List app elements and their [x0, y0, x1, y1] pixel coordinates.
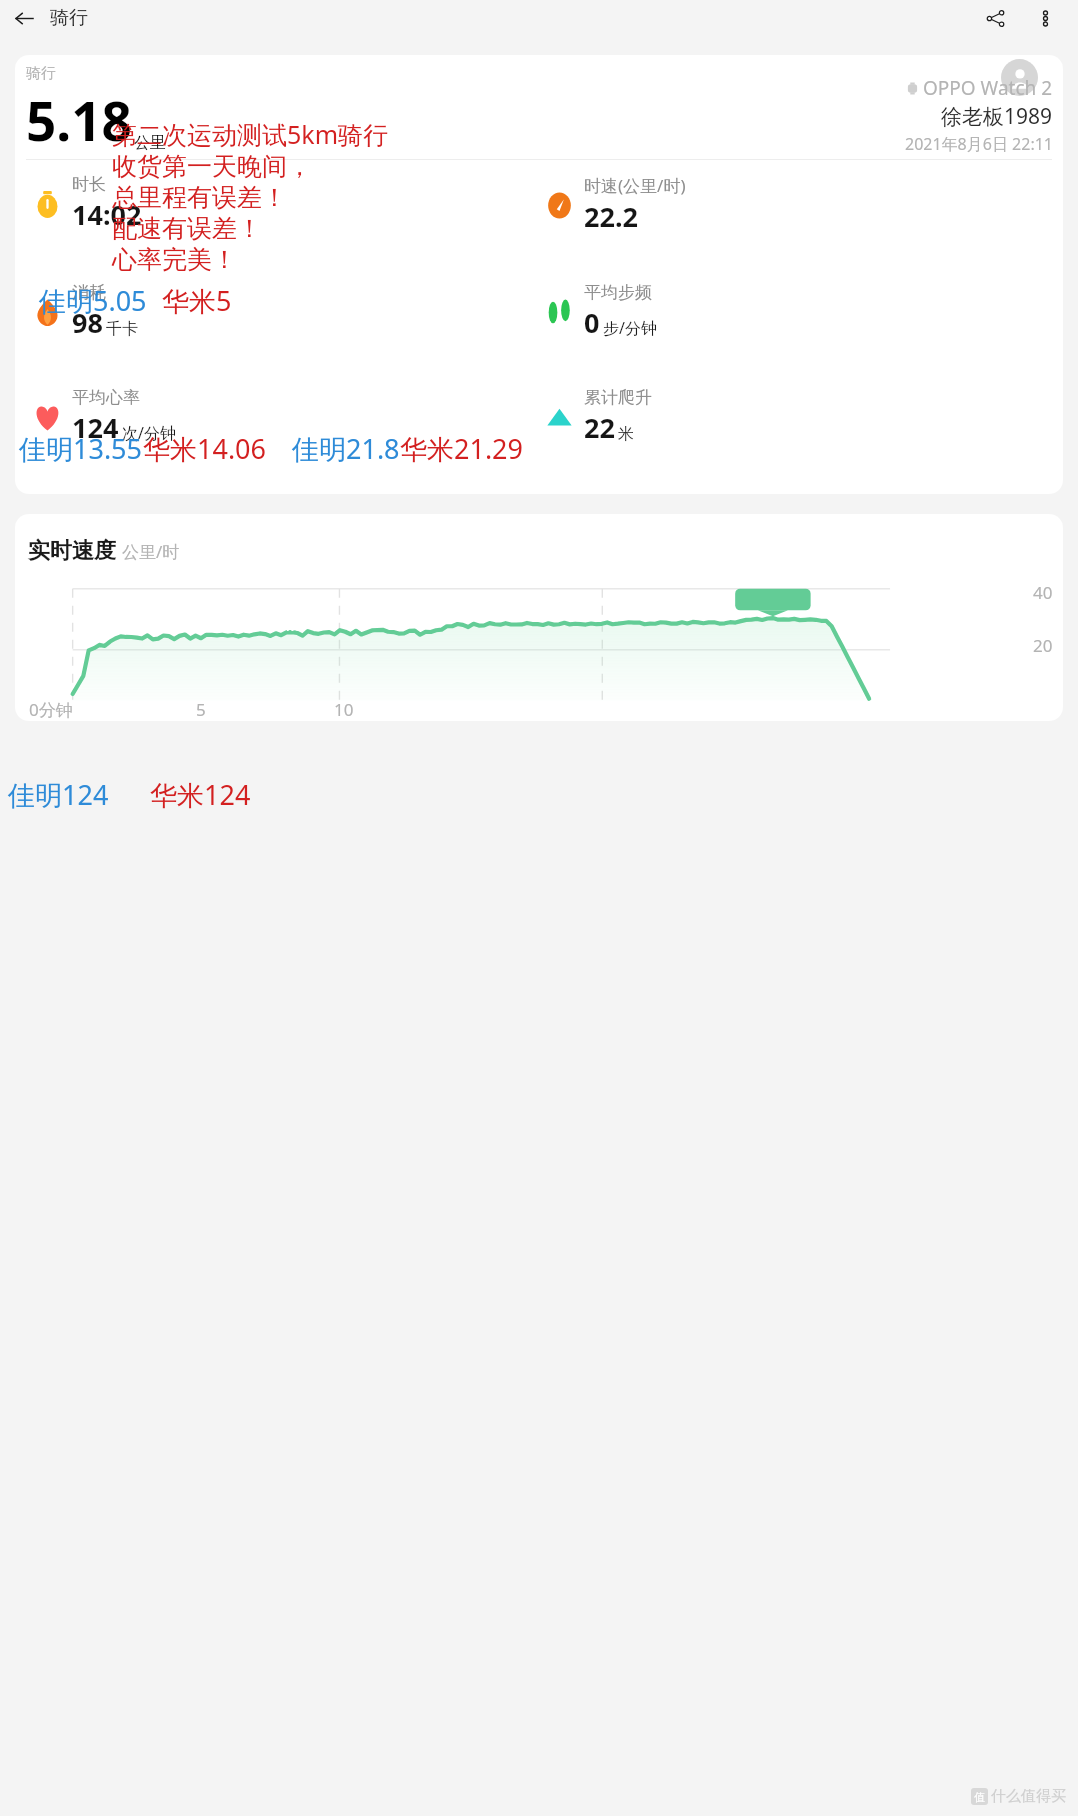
staticText: 5.18 — [26, 84, 132, 156]
staticText: 22 — [584, 409, 615, 446]
button[interactable]: 实时速度 — [15, 514, 1063, 721]
staticText: 骑行 — [50, 6, 88, 30]
staticText: 华米5 — [162, 282, 232, 319]
staticText: 平均心率 — [72, 387, 140, 408]
staticText: 时长 — [72, 174, 106, 195]
staticText: 徐老板1989 — [941, 102, 1053, 131]
staticText: 40 — [1033, 581, 1053, 604]
staticText: 华米124 — [150, 776, 251, 813]
button[interactable]: More options — [1026, 0, 1064, 36]
staticText: 0分钟 — [29, 698, 73, 721]
staticText: 时速(公里/时) — [584, 174, 686, 197]
staticText: 华米21.29 — [400, 430, 524, 467]
staticText: 配速有误差！ — [112, 213, 262, 244]
staticText: 步/分钟 — [603, 317, 657, 339]
staticText: 佳明124 — [8, 776, 109, 813]
staticText: 24.8 — [272, 614, 304, 636]
button[interactable]: Back — [7, 1, 41, 35]
staticText: 20 — [1033, 634, 1053, 657]
staticText: 公里 — [134, 133, 166, 153]
staticText: 第二次运动测试5km骑行 — [112, 117, 389, 151]
staticText: 收货第一天晚间， — [112, 151, 312, 182]
staticText: 总里程有误差！ — [112, 182, 287, 213]
staticText: 心率完美！ — [112, 244, 237, 275]
staticText: 累计爬升 — [584, 387, 652, 408]
staticText: 千卡 — [106, 319, 138, 339]
staticText: 124 — [72, 409, 119, 446]
staticText: 米 — [618, 424, 634, 444]
staticText: 骑行 — [26, 64, 56, 83]
staticText: 0 — [584, 304, 600, 341]
staticText: 98 — [72, 304, 103, 341]
staticText: 佳明5.05 — [39, 282, 147, 319]
staticText: 2021年8月6日 22:11 — [905, 133, 1053, 155]
staticText: 什么值得买 — [991, 1787, 1066, 1806]
staticText: 佳明21.8 — [292, 430, 400, 467]
staticText: 次/分钟 — [122, 422, 176, 444]
staticText: 平均步频 — [584, 282, 652, 303]
staticText: 华米14.06 — [143, 430, 267, 467]
staticText: 公里/时 — [122, 540, 180, 563]
staticText: 实时速度 — [28, 537, 116, 565]
staticText: 佳明13.55 — [19, 430, 143, 467]
staticText: OPPO Watch 2 — [923, 75, 1053, 101]
staticText: 值 — [974, 1790, 985, 1804]
staticText: 消耗 — [72, 282, 106, 303]
staticText: 14:02 — [72, 196, 142, 233]
button[interactable]: Share — [976, 0, 1014, 36]
staticText: 5 — [196, 698, 206, 721]
button[interactable]: 骑行 — [15, 55, 1063, 494]
button[interactable]: Avatar — [1001, 59, 1038, 96]
staticText: 22.2 — [584, 198, 638, 235]
staticText: 10 — [334, 698, 354, 721]
